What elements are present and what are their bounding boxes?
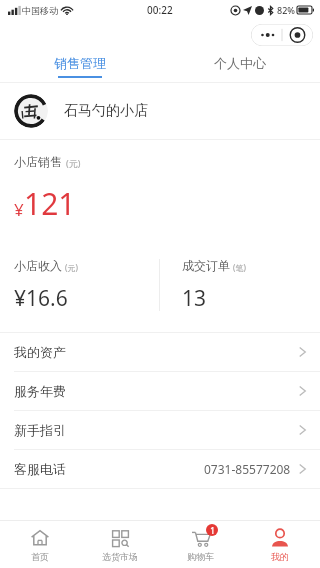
staticText: 我的资产 [14,344,66,360]
button[interactable]: 个人中心 [160,50,320,82]
staticText: 销售管理 [54,55,106,71]
button[interactable]: 销售管理 [0,50,160,82]
staticText: ¥16.6 [14,284,68,313]
staticText: 新手指引 [14,422,66,438]
button[interactable]: 成交订单 [160,246,320,324]
staticText: 我的 [271,551,289,562]
button[interactable]: 石马勺的小店 [0,83,320,139]
staticText: 石马勺的小店 [64,102,148,120]
button[interactable]: Mini program menu [251,24,313,46]
button[interactable]: 新手指引 [0,411,320,449]
button[interactable]: 首页 [0,521,80,568]
button[interactable]: 我的资产 [0,333,320,371]
staticText: (笔) [233,262,246,273]
staticText: 82% [277,4,295,16]
button[interactable]: 服务年费 [0,372,320,410]
staticText: 121 [24,183,76,224]
staticText: ¥ [14,198,24,221]
button[interactable]: 我的 [240,521,320,568]
staticText: 首页 [31,551,49,562]
staticText: 成交订单 [182,258,230,273]
button[interactable]: 客服电话 [0,450,320,488]
staticText: (元) [65,262,78,273]
button[interactable]: 选货市场 [80,521,160,568]
staticText: 00:22 [147,3,173,17]
staticText: 服务年费 [14,383,66,399]
staticText: 个人中心 [214,55,266,71]
staticText: 小店销售 [14,154,62,169]
staticText: 中国移动 [22,5,58,16]
staticText: 0731-85577208 [204,461,291,477]
staticText: 选货市场 [102,551,138,562]
staticText: 购物车 [187,551,214,562]
staticText: 客服电话 [14,461,66,477]
button[interactable]: 1 [160,521,240,568]
button[interactable]: 小店收入 [0,246,159,324]
staticText: 小店收入 [14,258,62,273]
staticText: 13 [182,284,207,313]
staticText: (元) [66,157,81,169]
staticText: 1 [210,525,215,536]
